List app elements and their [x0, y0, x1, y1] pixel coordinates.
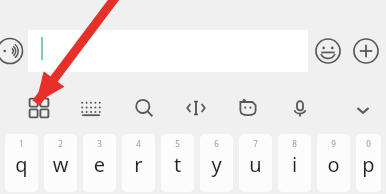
staticText: e [83, 151, 116, 178]
button[interactable]: 0 [356, 134, 381, 192]
staticText: 2 [44, 138, 77, 149]
button[interactable]: Collapse [348, 95, 378, 125]
button[interactable]: Add attachment [351, 36, 381, 66]
button[interactable]: Search [129, 93, 159, 123]
button[interactable]: 2 [44, 134, 77, 192]
button[interactable]: 4 [122, 134, 155, 192]
button[interactable]: 8 [278, 134, 311, 192]
button[interactable]: Voice input [0, 37, 24, 65]
staticText: 3 [83, 138, 116, 149]
staticText: 4 [122, 138, 155, 149]
staticText: y [200, 151, 233, 178]
button[interactable]: 9 [317, 134, 350, 192]
button[interactable]: 3 [83, 134, 116, 192]
staticText: t [161, 151, 194, 178]
staticText: 1 [5, 138, 38, 149]
staticText: 9 [317, 138, 350, 149]
staticText: 7 [239, 138, 272, 149]
staticText: r [122, 151, 155, 178]
staticText: 6 [200, 138, 233, 149]
button[interactable]: Stickers [233, 93, 263, 123]
staticText: 5 [161, 138, 194, 149]
button[interactable]: Text cursor [181, 93, 211, 123]
button[interactable]: Apps grid [24, 93, 54, 123]
staticText: 0 [356, 138, 381, 149]
button[interactable]: 6 [200, 134, 233, 192]
button[interactable] [28, 30, 308, 72]
button[interactable]: Emoji [313, 36, 343, 66]
button[interactable]: Voice typing [285, 93, 315, 123]
staticText: q [5, 151, 38, 178]
staticText: o [317, 151, 350, 178]
staticText: 8 [278, 138, 311, 149]
button[interactable]: 5 [161, 134, 194, 192]
staticText: i [278, 151, 311, 178]
button[interactable]: Keyboard layout [76, 93, 106, 123]
staticText: w [44, 151, 77, 178]
staticText: p [356, 151, 381, 178]
button[interactable]: 1 [5, 134, 38, 192]
button[interactable]: 7 [239, 134, 272, 192]
staticText: u [239, 151, 272, 178]
